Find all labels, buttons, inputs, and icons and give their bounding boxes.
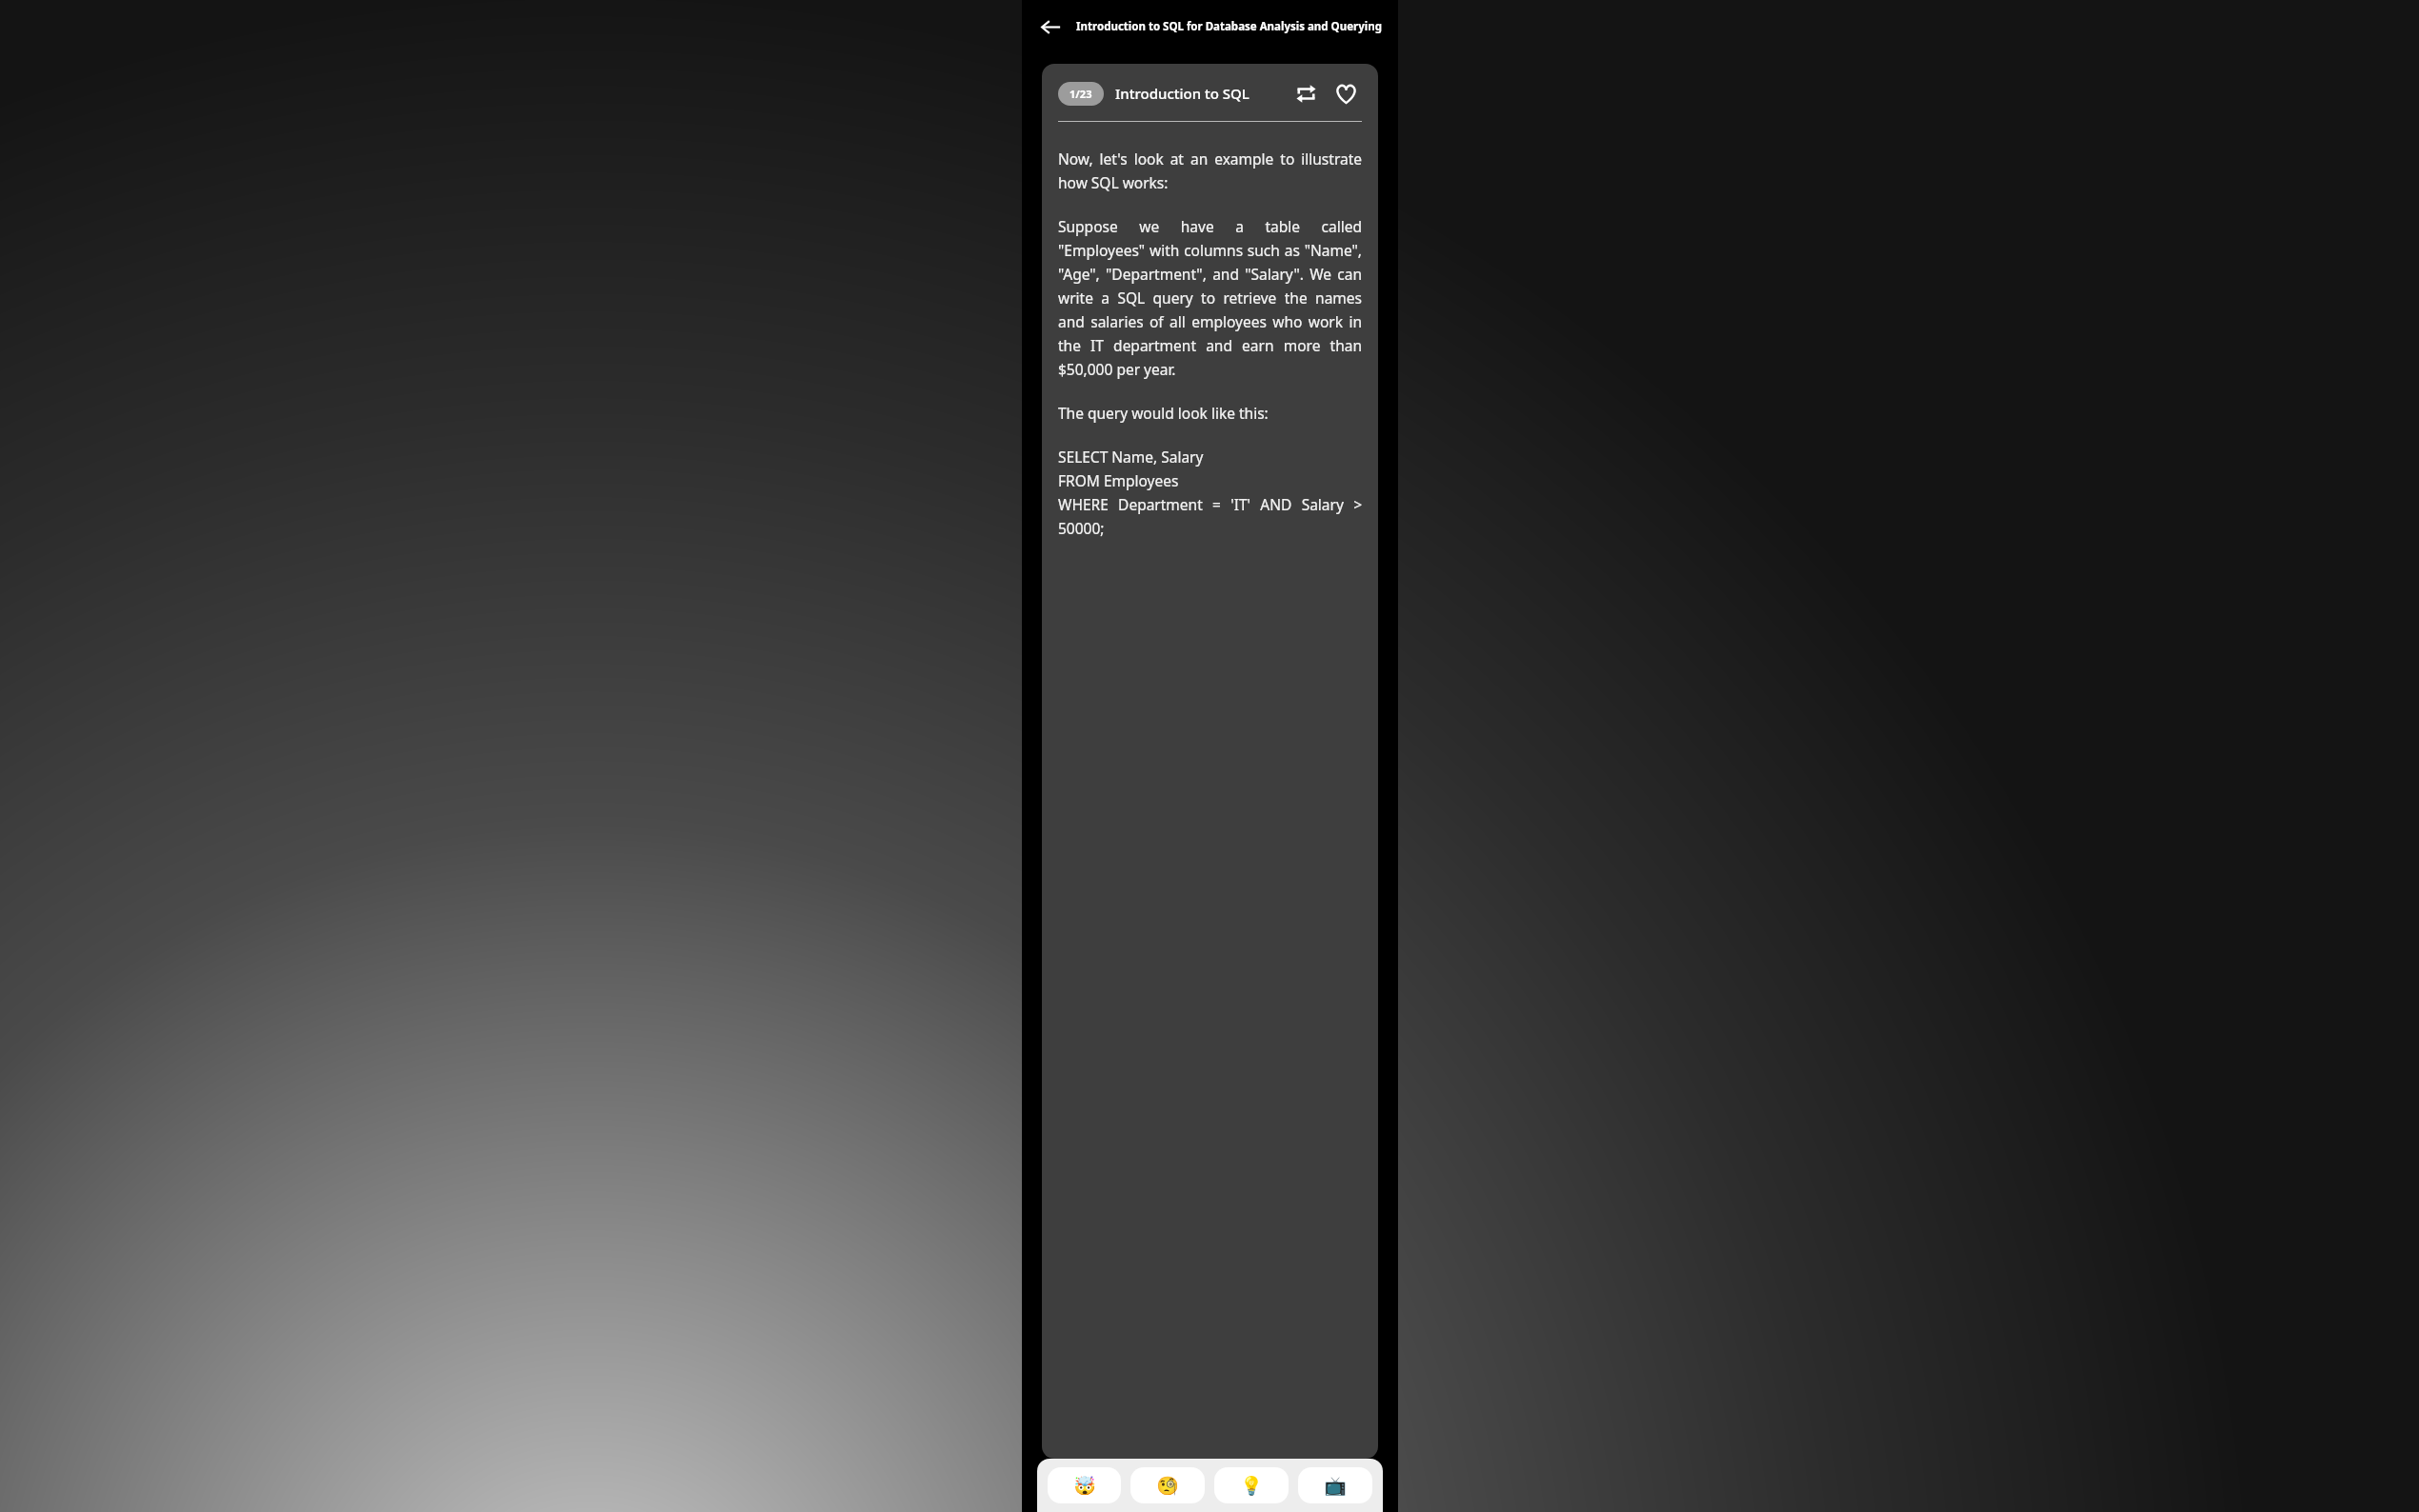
staticText: 💡: [1240, 1475, 1263, 1496]
button[interactable]: Back: [1030, 6, 1071, 48]
staticText: The query would look like this:: [1058, 403, 1362, 423]
staticText: 🧐: [1156, 1475, 1179, 1496]
staticText: Introduction to SQL: [1115, 84, 1249, 103]
staticText: SELECT Name, Salary FROM Employees WHERE…: [1058, 447, 1362, 538]
button[interactable]: Insightful: [1214, 1467, 1289, 1503]
staticText: Suppose we have a table called "Employee…: [1058, 216, 1362, 379]
button[interactable]: Mind blown: [1048, 1467, 1121, 1503]
button[interactable]: 1/23: [1058, 82, 1104, 106]
staticText: Introduction to SQL for Database Analysi…: [1076, 19, 1382, 34]
button[interactable]: Repeat: [1289, 77, 1322, 109]
staticText: 1/23: [1070, 87, 1092, 101]
button[interactable]: Watch: [1298, 1467, 1372, 1503]
staticText: 📺: [1324, 1475, 1347, 1496]
button[interactable]: Favourite: [1329, 77, 1362, 109]
staticText: Now, let's look at an example to illustr…: [1058, 149, 1362, 192]
staticText: 🤯: [1073, 1475, 1096, 1496]
button[interactable]: Curious: [1130, 1467, 1205, 1503]
